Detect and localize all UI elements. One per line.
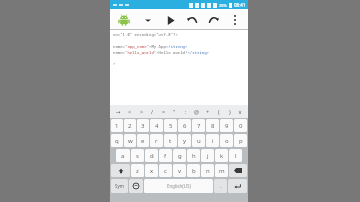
button[interactable]: 6 (178, 119, 191, 132)
staticText: x (150, 167, 154, 175)
button[interactable]: n (201, 164, 214, 177)
staticText: w (128, 137, 133, 145)
button[interactable]: 2 (124, 119, 136, 132)
button[interactable]: 9 (220, 119, 233, 132)
staticText: . (220, 182, 222, 190)
staticText: 9 (225, 122, 229, 130)
staticText: k (220, 152, 224, 160)
staticText: j (207, 152, 209, 160)
staticText: p (239, 137, 243, 145)
button[interactable]: → (112, 105, 124, 118)
button[interactable]: 3 (137, 119, 149, 132)
button[interactable]: Enter (228, 179, 247, 193)
button[interactable]: ) (224, 105, 235, 118)
staticText: 7 (197, 122, 201, 130)
staticText: z (136, 167, 139, 175)
staticText: m (219, 167, 225, 175)
button[interactable]: > (136, 105, 147, 118)
button[interactable]: Backspace (229, 164, 247, 177)
button[interactable]: / (147, 105, 158, 118)
staticText: y (183, 137, 187, 145)
button[interactable]: m (215, 164, 228, 177)
staticText: 0 (239, 122, 243, 130)
staticText: f (164, 152, 167, 160)
staticText: 25% (219, 3, 227, 8)
button[interactable]: f (159, 149, 172, 162)
button[interactable]: : (180, 105, 191, 118)
button[interactable]: . (214, 179, 227, 193)
button[interactable]: Redo (205, 11, 223, 29)
button[interactable]: English(US) (144, 179, 213, 193)
button[interactable]: j (201, 149, 214, 162)
staticText: on="1.0" encoding="utf-8"?> (113, 32, 178, 37)
staticText: 6 (183, 122, 187, 130)
staticText: 1 (115, 122, 119, 130)
button[interactable]: i (206, 134, 219, 147)
button[interactable]: h (187, 149, 200, 162)
button[interactable]: a (116, 149, 130, 162)
staticText: ( (218, 108, 220, 115)
staticText: + (206, 108, 210, 115)
button[interactable]: Dropdown (142, 14, 154, 26)
button[interactable]: o (220, 134, 233, 147)
button[interactable]: More options (227, 12, 243, 28)
button[interactable]: w (124, 134, 136, 147)
button[interactable]: App project (115, 11, 132, 28)
button[interactable]: u (192, 134, 205, 147)
staticText: 2 (128, 122, 132, 130)
button[interactable]: p (234, 134, 247, 147)
button[interactable]: t (164, 134, 177, 147)
staticText: 4 (155, 122, 159, 130)
button[interactable]: ( (213, 105, 224, 118)
button[interactable]: + (202, 105, 213, 118)
button[interactable]: k (215, 149, 228, 162)
button[interactable]: Run (161, 11, 179, 29)
staticText: = (162, 108, 166, 115)
staticText: 08:41 (234, 2, 246, 8)
button[interactable]: 4 (150, 119, 163, 132)
button[interactable]: 0 (234, 119, 247, 132)
button[interactable]: d (145, 149, 158, 162)
button[interactable]: Sym (111, 179, 128, 193)
button[interactable]: b (187, 164, 200, 177)
button[interactable]: @ (191, 105, 202, 118)
staticText: e (141, 137, 145, 145)
button[interactable]: x (145, 164, 158, 177)
staticText: 5 (169, 122, 173, 130)
button[interactable]: 7 (192, 119, 205, 132)
button[interactable]: Undo (183, 11, 201, 29)
staticText: n (206, 167, 210, 175)
button[interactable]: e (137, 134, 149, 147)
button[interactable]: c (159, 164, 172, 177)
button[interactable]: q (111, 134, 123, 147)
staticText: 8 (211, 122, 215, 130)
button[interactable]: l (229, 149, 242, 162)
staticText: g (178, 152, 182, 160)
staticText: q (115, 137, 119, 145)
button[interactable]: " (169, 105, 180, 118)
button[interactable]: z (131, 164, 144, 177)
staticText: l (235, 152, 237, 160)
button[interactable]: 1 (111, 119, 123, 132)
button[interactable]: < (124, 105, 136, 118)
button[interactable]: s (131, 149, 144, 162)
staticText: → (116, 109, 121, 115)
button[interactable]: 8 (206, 119, 219, 132)
button[interactable]: y (178, 134, 191, 147)
button[interactable]: ∨ (235, 105, 246, 118)
staticText: d (150, 152, 154, 160)
button[interactable]: = (158, 105, 169, 118)
staticText: " (173, 108, 176, 115)
staticText: s (136, 152, 139, 160)
button[interactable]: r (150, 134, 163, 147)
staticText: c (164, 167, 167, 175)
staticText: English(US) (167, 183, 191, 189)
staticText: a (121, 152, 125, 160)
staticText: : (185, 108, 187, 115)
button[interactable]: v (173, 164, 186, 177)
button[interactable]: 5 (164, 119, 177, 132)
staticText: v (178, 167, 182, 175)
button[interactable]: Emoji (129, 179, 143, 193)
button[interactable]: Shift (111, 164, 130, 177)
button[interactable]: g (173, 149, 186, 162)
